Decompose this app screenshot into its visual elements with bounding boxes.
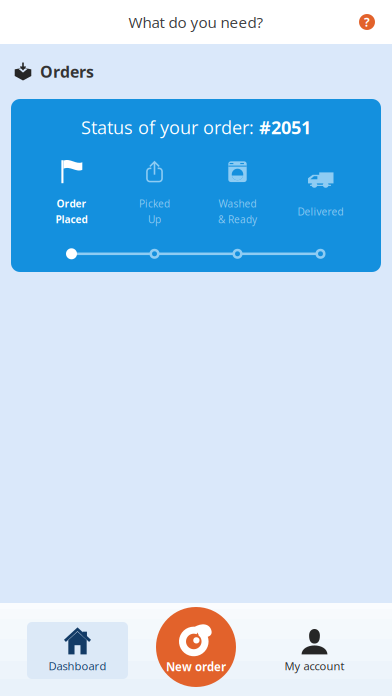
staticText: Status of your order: xyxy=(81,115,259,140)
staticText: Placed xyxy=(55,212,87,226)
staticText: & Ready xyxy=(218,212,257,226)
staticText: Up xyxy=(148,212,161,226)
staticText: New order xyxy=(166,659,226,675)
staticText: Delivered xyxy=(297,205,343,218)
button[interactable]: Help xyxy=(350,5,384,39)
staticText: My account xyxy=(284,658,344,674)
staticText: Picked xyxy=(139,197,170,210)
button[interactable]: Dashboard xyxy=(27,622,128,679)
staticText: What do you need? xyxy=(128,12,263,32)
staticText: ? xyxy=(364,14,370,30)
staticText: Order xyxy=(56,197,86,210)
staticText: Orders xyxy=(40,61,94,82)
staticText: Washed xyxy=(218,197,256,210)
button[interactable]: New order xyxy=(156,607,236,687)
button[interactable]: My account xyxy=(264,622,365,679)
staticText: Dashboard xyxy=(48,658,106,674)
staticText: #2051 xyxy=(259,115,311,140)
